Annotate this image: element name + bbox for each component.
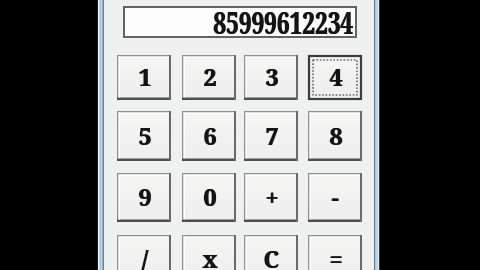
staticText: 4	[330, 61, 343, 92]
button[interactable]: 8	[308, 111, 362, 161]
staticText: 3	[266, 61, 279, 92]
staticText: 9	[139, 181, 152, 212]
staticText: 0	[204, 181, 217, 212]
button[interactable]: 4	[308, 55, 362, 100]
staticText: +	[266, 181, 279, 212]
staticText: =	[329, 243, 342, 270]
button[interactable]: /	[117, 235, 171, 270]
staticText: 4	[329, 61, 342, 92]
staticText: 1	[138, 61, 151, 92]
staticText: -	[332, 181, 340, 212]
staticText: 3	[265, 61, 278, 92]
staticText: 9	[138, 181, 151, 212]
button[interactable]: C	[244, 235, 298, 270]
staticText: 7	[266, 120, 279, 151]
staticText: 85999612234	[214, 2, 354, 34]
staticText: 6	[204, 120, 217, 151]
staticText: 4	[330, 61, 343, 92]
staticText: 8	[330, 120, 343, 151]
staticText: 1	[139, 61, 152, 92]
staticText: 1	[139, 61, 152, 92]
staticText: 9	[139, 181, 152, 212]
staticText: 6	[204, 120, 217, 151]
staticText: -	[332, 181, 340, 212]
staticText: 2	[203, 61, 216, 92]
button[interactable]: 7	[244, 111, 298, 161]
button[interactable]: +	[244, 173, 298, 222]
button[interactable]: =	[308, 235, 362, 270]
staticText: 8	[330, 120, 343, 151]
button[interactable]: 0	[182, 173, 236, 222]
staticText: 7	[266, 120, 279, 151]
staticText: x	[203, 243, 218, 270]
staticText: 2	[204, 61, 217, 92]
staticText: 6	[203, 120, 216, 151]
staticText: 5	[139, 120, 152, 151]
button[interactable]: 3	[244, 55, 298, 100]
staticText: 5	[138, 120, 151, 151]
staticText: 0	[203, 181, 216, 212]
button[interactable]: 1	[117, 55, 171, 100]
staticText: 3	[266, 61, 279, 92]
button[interactable]: -	[308, 173, 362, 222]
button[interactable]: 85999612234	[123, 6, 357, 38]
staticText: 5	[139, 120, 152, 151]
staticText: 7	[265, 120, 278, 151]
staticText: +	[265, 181, 278, 212]
staticText: =	[330, 243, 343, 270]
button[interactable]: 2	[182, 55, 236, 100]
staticText: /	[142, 243, 149, 270]
staticText: C	[264, 243, 280, 270]
staticText: C	[263, 243, 279, 270]
staticText: -	[331, 181, 339, 212]
staticText: 85999612234	[214, 2, 354, 34]
button[interactable]: 5	[117, 111, 171, 161]
staticText: C	[264, 243, 280, 270]
staticText: +	[266, 181, 279, 212]
staticText: =	[330, 243, 343, 270]
staticText: 2	[204, 61, 217, 92]
staticText: /	[142, 243, 149, 270]
staticText: x	[203, 243, 218, 270]
button[interactable]: 9	[117, 173, 171, 222]
button[interactable]: 6	[182, 111, 236, 161]
button[interactable]: x	[182, 235, 236, 270]
staticText: 85999612234	[213, 2, 353, 34]
staticText: x	[202, 243, 217, 270]
staticText: 0	[204, 181, 217, 212]
staticText: 8	[329, 120, 342, 151]
staticText: /	[141, 243, 148, 270]
